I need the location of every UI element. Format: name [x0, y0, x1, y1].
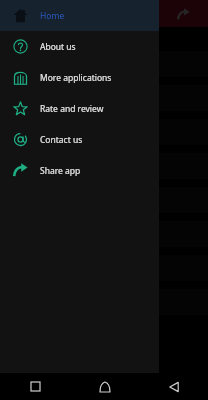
button[interactable]: Share app — [0, 155, 159, 186]
staticText: Share app — [40, 165, 81, 177]
button[interactable]: Recent apps — [0, 373, 70, 400]
staticText: Home — [40, 10, 65, 22]
button[interactable]: Share app — [172, 3, 194, 25]
button[interactable]: Rate and review — [0, 93, 159, 124]
button[interactable]: More applications — [0, 62, 159, 93]
staticText: About us — [40, 41, 76, 53]
button[interactable]: Home — [70, 373, 139, 400]
button[interactable]: Contact us — [0, 124, 159, 155]
button[interactable]: Home — [0, 0, 159, 31]
staticText: Rate and review — [40, 103, 104, 115]
button[interactable]: Back — [139, 373, 208, 400]
button[interactable]: About us — [0, 31, 159, 62]
staticText: More applications — [40, 72, 112, 84]
staticText: Contact us — [40, 134, 83, 146]
